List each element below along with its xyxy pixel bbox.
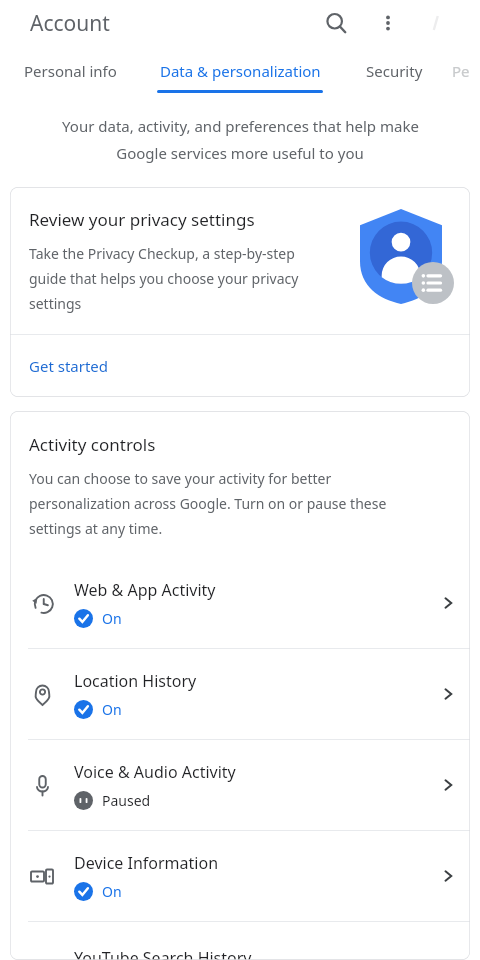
button[interactable]: Location History	[10, 649, 470, 739]
staticText: Personal info	[24, 61, 117, 81]
staticText: Get started	[29, 356, 109, 376]
staticText: Google services more useful to you	[116, 143, 364, 163]
button[interactable]: Pe	[452, 46, 480, 96]
staticText: On	[102, 882, 122, 901]
staticText: Location History	[74, 670, 197, 692]
staticText: On	[102, 609, 122, 628]
button[interactable]: Voice & Audio Activity	[10, 740, 470, 830]
button[interactable]: YouTube Search History	[10, 922, 470, 960]
staticText: Paused	[102, 791, 151, 810]
staticText: Security	[366, 61, 423, 81]
staticText: personalization across Google. Turn on o…	[29, 494, 387, 513]
staticText: On	[102, 700, 122, 719]
staticText: Voice & Audio Activity	[74, 761, 236, 783]
button[interactable]: Search	[316, 3, 356, 43]
staticText: YouTube Search History	[74, 947, 252, 960]
staticText: Your data, activity, and preferences tha…	[62, 116, 419, 136]
staticText: Pe	[452, 61, 470, 81]
button[interactable]: Web & App Activity	[10, 558, 470, 648]
staticText: Web & App Activity	[74, 579, 216, 601]
button[interactable]: Device Information	[10, 831, 470, 921]
button[interactable]: Security	[345, 46, 443, 96]
staticText: guide that helps you choose your privacy	[29, 269, 299, 288]
button[interactable]: Personal info	[12, 46, 128, 96]
button[interactable]: More options	[368, 3, 408, 43]
button[interactable]: Get started	[10, 335, 470, 397]
staticText: settings at any time.	[29, 519, 163, 538]
staticText: You can choose to save your activity for…	[29, 469, 332, 488]
staticText: settings	[29, 294, 82, 313]
staticText: Take the Privacy Checkup, a step-by-step	[29, 244, 295, 263]
staticText: Device Information	[74, 852, 219, 874]
button[interactable]: Data & personalization	[150, 46, 330, 96]
staticText: Activity controls	[29, 433, 156, 456]
staticText: Data & personalization	[160, 61, 321, 81]
staticText: Review your privacy settings	[29, 208, 255, 231]
staticText: Account	[30, 9, 110, 38]
